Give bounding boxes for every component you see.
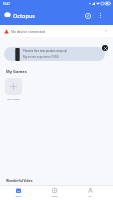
staticText: Wonderful Video [6, 179, 33, 183]
staticText: 10:47 [3, 2, 10, 6]
staticText: Octopus [13, 12, 36, 19]
staticText: My Games [6, 69, 27, 74]
button[interactable]: More options [94, 9, 107, 22]
button[interactable]: Add Games [5, 78, 22, 100]
button[interactable]: Me [72, 186, 108, 200]
staticText: Add Games [7, 97, 20, 100]
staticText: Phoenix Geo new product snap up! [23, 49, 68, 53]
staticText: Me [88, 195, 92, 198]
button[interactable]: Videos [36, 186, 72, 200]
button[interactable]: Phoenix Geo new product snap up! [4, 47, 105, 61]
staticText: Big screen experience PUBG [23, 55, 59, 59]
button[interactable]: Close banner [102, 45, 108, 51]
staticText: Game [15, 195, 22, 198]
staticText: No device connected [11, 29, 46, 34]
button[interactable]: No device connected [0, 25, 113, 37]
staticText: Videos [51, 195, 58, 198]
button[interactable]: Explore [81, 9, 94, 22]
button[interactable]: Game [0, 186, 36, 200]
